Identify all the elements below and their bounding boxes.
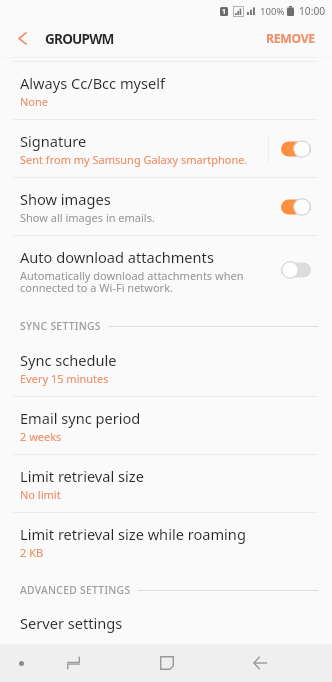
button[interactable]: Limit retrieval size xyxy=(0,455,332,513)
staticText: Auto download attachments xyxy=(20,247,214,267)
button[interactable]: Toggle off xyxy=(281,258,311,282)
staticText: ADVANCED SETTINGS xyxy=(20,583,131,597)
button[interactable]: Auto download attachments xyxy=(0,236,332,307)
staticText: None xyxy=(20,94,49,109)
button[interactable]: Limit retrieval size while roaming xyxy=(0,513,332,571)
staticText: Limit retrieval size while roaming xyxy=(20,524,246,544)
staticText: GROUPWM xyxy=(45,29,114,48)
staticText: Automatically download attachments when … xyxy=(20,268,244,295)
staticText: REMOVE xyxy=(266,30,315,47)
staticText: Sync schedule xyxy=(20,350,117,370)
staticText: Signature xyxy=(20,131,87,151)
staticText: Limit retrieval size xyxy=(20,466,144,486)
button[interactable]: Email sync period xyxy=(0,397,332,455)
staticText: Sent from my Samsung Galaxy smartphone. xyxy=(20,152,248,167)
staticText: No limit xyxy=(20,487,61,502)
staticText: 10:00 xyxy=(299,4,326,18)
button[interactable]: Toggle on xyxy=(281,195,311,219)
button[interactable]: Toggle on xyxy=(281,137,311,161)
button[interactable]: Recent apps xyxy=(46,644,101,682)
button[interactable]: Home xyxy=(139,644,194,682)
staticText: 1 xyxy=(222,7,227,16)
button[interactable]: Always Cc/Bcc myself xyxy=(0,62,332,120)
staticText: 2 KB xyxy=(20,545,44,560)
staticText: Email sync period xyxy=(20,408,141,428)
button[interactable]: Signature xyxy=(0,120,332,178)
button[interactable]: Back xyxy=(232,644,287,682)
staticText: 100% xyxy=(260,5,285,18)
staticText: Always Cc/Bcc myself xyxy=(20,73,166,93)
staticText: Every 15 minutes xyxy=(20,371,109,386)
button[interactable]: REMOVE xyxy=(250,22,332,57)
staticText: Server settings xyxy=(20,613,123,633)
staticText: Show all images in emails. xyxy=(20,210,155,225)
staticText: Show images xyxy=(20,189,111,209)
button[interactable]: Sync schedule xyxy=(0,339,332,397)
staticText: 2 weeks xyxy=(20,429,62,444)
button[interactable]: Show images xyxy=(0,178,332,236)
button[interactable]: Server settings xyxy=(0,601,332,659)
button[interactable]: Navigate up xyxy=(0,22,44,57)
staticText: SYNC SETTINGS xyxy=(20,319,101,333)
